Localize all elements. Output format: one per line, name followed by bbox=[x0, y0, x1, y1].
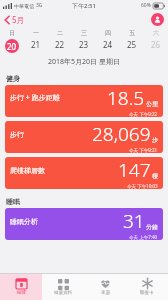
staticText: 日 bbox=[9, 29, 15, 37]
button[interactable]: 爬樓梯層數 bbox=[5, 157, 163, 189]
staticText: 今天 下午9:21 bbox=[129, 147, 158, 153]
staticText: 28,069 bbox=[92, 121, 151, 147]
staticText: 今天 上午7:40 bbox=[129, 234, 158, 240]
staticText: 22 bbox=[55, 39, 65, 50]
button[interactable]: 21 bbox=[24, 39, 48, 50]
staticText: 24 bbox=[103, 39, 113, 50]
button[interactable]: 步行 + 跑步距離 bbox=[5, 85, 163, 117]
staticText: 31 bbox=[123, 208, 145, 234]
button[interactable]: 醫療卡 bbox=[126, 274, 168, 300]
staticText: 147 bbox=[118, 157, 151, 183]
button[interactable]: 20 bbox=[0, 39, 24, 53]
staticText: 步行 bbox=[10, 130, 24, 139]
button[interactable]: 23 bbox=[72, 39, 96, 50]
staticText: 來源 bbox=[101, 290, 110, 296]
staticText: 睡眠分析 bbox=[10, 217, 38, 226]
button[interactable]: 26 bbox=[144, 39, 168, 50]
staticText: 一 bbox=[33, 29, 39, 37]
button[interactable]: 來源 bbox=[84, 274, 126, 300]
staticText: 五 bbox=[129, 29, 135, 37]
staticText: 樓 bbox=[152, 172, 158, 180]
staticText: 18.5 bbox=[107, 85, 145, 111]
button[interactable]: 健康資料 bbox=[42, 274, 84, 300]
staticText: 睡眠 bbox=[6, 197, 20, 206]
staticText: 三 bbox=[81, 29, 87, 37]
button[interactable]: 睡眠分析 bbox=[5, 208, 163, 240]
staticText: 2018年5月20日 星期日 bbox=[48, 57, 120, 67]
staticText: 下午2:51 bbox=[72, 2, 96, 10]
button[interactable]: 25 bbox=[120, 39, 144, 50]
staticText: 爬樓梯層數 bbox=[10, 166, 45, 175]
staticText: 六 bbox=[153, 29, 159, 37]
button[interactable]: 概覽 bbox=[0, 274, 42, 300]
staticText: 今天 下午9:22 bbox=[129, 111, 158, 117]
button[interactable]: Profile bbox=[151, 13, 164, 26]
staticText: 21 bbox=[31, 39, 41, 50]
staticText: 分鐘 bbox=[146, 223, 158, 231]
staticText: 60% bbox=[141, 2, 151, 9]
staticText: 健康資料 bbox=[54, 290, 72, 296]
staticText: 步行 + 跑步距離 bbox=[10, 93, 60, 103]
staticText: 25 bbox=[127, 39, 137, 50]
staticText: 健身 bbox=[6, 74, 20, 83]
staticText: 概覽 bbox=[17, 290, 26, 296]
staticText: 二 bbox=[57, 29, 63, 37]
staticText: 步 bbox=[152, 136, 158, 144]
staticText: 5月 bbox=[12, 14, 25, 25]
staticText: 四 bbox=[105, 29, 111, 37]
staticText: 20 bbox=[7, 41, 17, 52]
button[interactable]: 22 bbox=[48, 39, 72, 50]
button[interactable]: 步行 bbox=[5, 121, 163, 153]
staticText: 3G bbox=[36, 2, 43, 9]
button[interactable]: 24 bbox=[96, 39, 120, 50]
staticText: 26 bbox=[151, 39, 161, 50]
staticText: 今天 下午10:03 bbox=[127, 183, 158, 189]
staticText: 23 bbox=[79, 39, 89, 50]
staticText: 公里 bbox=[146, 100, 158, 108]
button[interactable]: 5月 bbox=[0, 12, 31, 27]
staticText: 醫療卡 bbox=[140, 290, 154, 296]
staticText: 中華電信 bbox=[14, 3, 34, 9]
